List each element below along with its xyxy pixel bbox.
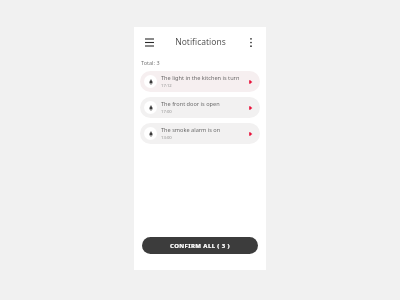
button[interactable]: CONFIRM ALL ( 3 ) <box>142 237 258 254</box>
button[interactable]: Open notification <box>246 129 256 139</box>
staticText: 17:00 <box>161 109 172 115</box>
button[interactable]: Open notification <box>246 77 256 87</box>
staticText: Notifications <box>175 36 226 48</box>
staticText: Total: 3 <box>141 59 160 66</box>
button[interactable]: Menu <box>141 34 157 50</box>
staticText: 17:12 <box>161 83 172 89</box>
button[interactable]: The front door is open <box>140 97 260 118</box>
staticText: 13:00 <box>161 135 172 141</box>
staticText: CONFIRM ALL ( 3 ) <box>170 242 230 250</box>
button[interactable]: The smoke alarm is on <box>140 123 260 144</box>
button[interactable]: More options <box>243 34 259 50</box>
button[interactable]: The light in the kitchen is turn on <box>140 71 260 92</box>
staticText: The front door is open <box>161 100 220 108</box>
staticText: The light in the kitchen is turn on <box>161 74 244 82</box>
button[interactable]: Open notification <box>246 103 256 113</box>
staticText: The smoke alarm is on <box>161 126 221 134</box>
